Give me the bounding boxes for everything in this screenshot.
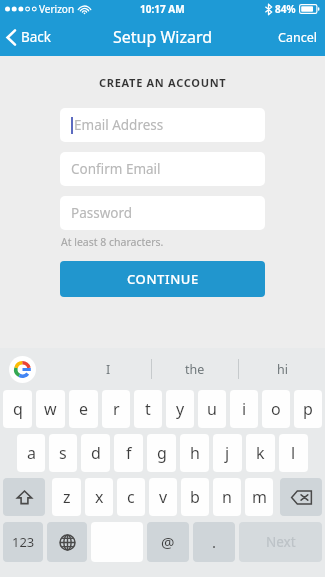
- button[interactable]: 123: [3, 522, 43, 562]
- button[interactable]: @: [147, 522, 189, 562]
- staticText: Password: [71, 204, 133, 222]
- staticText: 10:17 AM: [140, 2, 185, 16]
- button[interactable]: e: [69, 390, 98, 428]
- staticText: Cancel: [278, 29, 317, 46]
- button[interactable]: the: [152, 348, 238, 390]
- button[interactable]: u: [198, 390, 226, 428]
- staticText: z: [63, 486, 71, 508]
- button[interactable]: Shift: [3, 478, 45, 516]
- button[interactable]: r: [102, 390, 130, 428]
- staticText: the: [185, 361, 205, 378]
- staticText: t: [145, 398, 151, 420]
- button[interactable]: d: [81, 434, 110, 472]
- button[interactable]: z: [52, 478, 81, 516]
- staticText: x: [95, 486, 104, 508]
- staticText: y: [176, 398, 185, 420]
- staticText: 84%: [275, 2, 296, 16]
- button[interactable]: l: [279, 434, 308, 472]
- staticText: @: [161, 532, 175, 552]
- button[interactable]: j: [213, 434, 242, 472]
- button[interactable]: o: [262, 390, 290, 428]
- button[interactable]: c: [117, 478, 145, 516]
- staticText: Next: [266, 533, 296, 551]
- button[interactable]: i: [230, 390, 258, 428]
- staticText: h: [190, 442, 200, 464]
- button[interactable]: t: [134, 390, 162, 428]
- button[interactable]: Back: [0, 22, 62, 52]
- staticText: hi: [277, 361, 288, 378]
- button[interactable]: b: [181, 478, 209, 516]
- button[interactable]: n: [213, 478, 241, 516]
- button[interactable]: f: [114, 434, 143, 472]
- button[interactable]: Confirm Email: [60, 152, 265, 186]
- staticText: d: [91, 442, 101, 464]
- button[interactable]: k: [246, 434, 275, 472]
- button[interactable]: Password: [60, 196, 265, 230]
- button[interactable]: CONTINUE: [60, 261, 265, 297]
- button[interactable]: Backspace: [280, 478, 322, 516]
- button[interactable]: I: [65, 348, 151, 390]
- staticText: 123: [12, 533, 35, 551]
- staticText: m: [252, 486, 267, 508]
- button[interactable]: Google: [9, 356, 36, 383]
- staticText: Confirm Email: [71, 160, 161, 178]
- staticText: CONTINUE: [127, 270, 199, 288]
- button[interactable]: Cancel: [270, 21, 325, 54]
- staticText: e: [79, 398, 89, 420]
- staticText: j: [225, 442, 230, 464]
- button[interactable]: p: [294, 390, 322, 428]
- button[interactable]: m: [245, 478, 273, 516]
- staticText: i: [242, 398, 247, 420]
- button[interactable]: h: [180, 434, 209, 472]
- staticText: l: [291, 442, 296, 464]
- staticText: q: [13, 398, 23, 420]
- button[interactable]: g: [147, 434, 176, 472]
- button[interactable]: w: [36, 390, 65, 428]
- button[interactable]: x: [85, 478, 113, 516]
- staticText: CREATE AN ACCOUNT: [99, 75, 227, 90]
- staticText: u: [207, 398, 217, 420]
- staticText: Setup Wizard: [113, 26, 213, 48]
- staticText: Verizon: [39, 2, 75, 16]
- staticText: Back: [21, 28, 52, 46]
- button[interactable]: s: [49, 434, 77, 472]
- staticText: w: [44, 398, 57, 420]
- button[interactable]: Email Address: [60, 108, 265, 142]
- button[interactable]: .: [193, 522, 235, 562]
- staticText: v: [159, 486, 168, 508]
- button[interactable]: a: [17, 434, 45, 472]
- staticText: k: [256, 442, 265, 464]
- staticText: f: [126, 442, 132, 464]
- button[interactable]: Change keyboard language: [47, 522, 87, 562]
- button[interactable]: hi: [239, 348, 325, 390]
- staticText: a: [27, 442, 36, 464]
- button[interactable]: q: [3, 390, 32, 428]
- button[interactable]: v: [149, 478, 177, 516]
- staticText: n: [222, 486, 232, 508]
- staticText: p: [303, 398, 313, 420]
- staticText: g: [157, 442, 167, 464]
- staticText: Email Address: [74, 116, 164, 134]
- staticText: .: [212, 532, 217, 552]
- staticText: r: [113, 398, 120, 420]
- staticText: o: [271, 398, 281, 420]
- staticText: c: [127, 486, 135, 508]
- staticText: b: [190, 486, 200, 508]
- staticText: s: [59, 442, 67, 464]
- staticText: At least 8 characters.: [61, 235, 164, 249]
- button[interactable]: Next: [239, 522, 322, 562]
- button[interactable]: y: [166, 390, 194, 428]
- staticText: I: [106, 361, 111, 378]
